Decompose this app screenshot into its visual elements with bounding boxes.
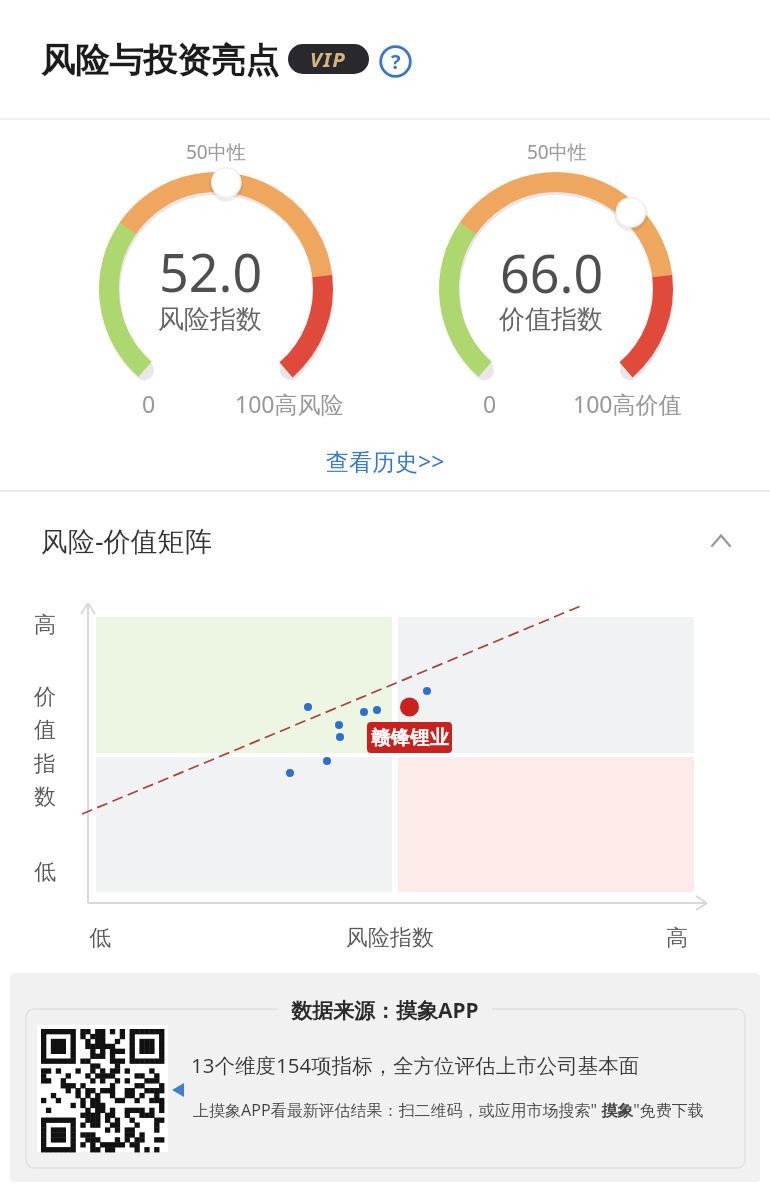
button[interactable]: VIP [288,44,369,74]
staticText: 风险指数 [158,303,262,336]
staticText: 风险指数 [346,924,434,952]
staticText: 50中性 [527,139,587,165]
staticText: 价值指数 [499,303,603,336]
staticText: 赣锋锂业 [371,726,449,750]
staticText: 高 [34,611,56,639]
staticText: 数 [34,783,56,811]
staticText: 100高价值 [573,388,682,419]
staticText: 0 [483,388,497,419]
staticText: 价 [34,683,56,711]
staticText: 52.0 [159,236,263,296]
staticText: 风险与投资亮点 [41,39,279,82]
button[interactable]: 赣锋锂业 [367,722,452,753]
button[interactable]: ? [379,45,412,78]
staticText: 高 [666,924,688,952]
staticText: VIP [310,46,347,73]
button[interactable]: 查看历史>> [326,445,445,476]
staticText: 上摸象APP看最新评估结果：扫二维码，或应用市场搜索" 摸象"免费下载 [193,1099,704,1121]
staticText: 指 [34,750,56,778]
staticText: 风险-价值矩阵 [41,522,212,559]
staticText: 100高风险 [235,388,344,419]
button[interactable] [700,525,742,557]
staticText: 数据来源：摸象APP [291,996,479,1025]
staticText: 查看历史>> [326,445,445,476]
staticText: 值 [34,716,56,744]
staticText: 低 [34,858,56,886]
staticText: 13个维度154项指标，全方位评估上市公司基本面 [191,1051,640,1079]
staticText: 0 [142,388,156,419]
staticText: 50中性 [186,139,246,165]
staticText: 低 [89,924,111,952]
staticText: ? [391,48,401,75]
staticText: 66.0 [500,237,604,297]
